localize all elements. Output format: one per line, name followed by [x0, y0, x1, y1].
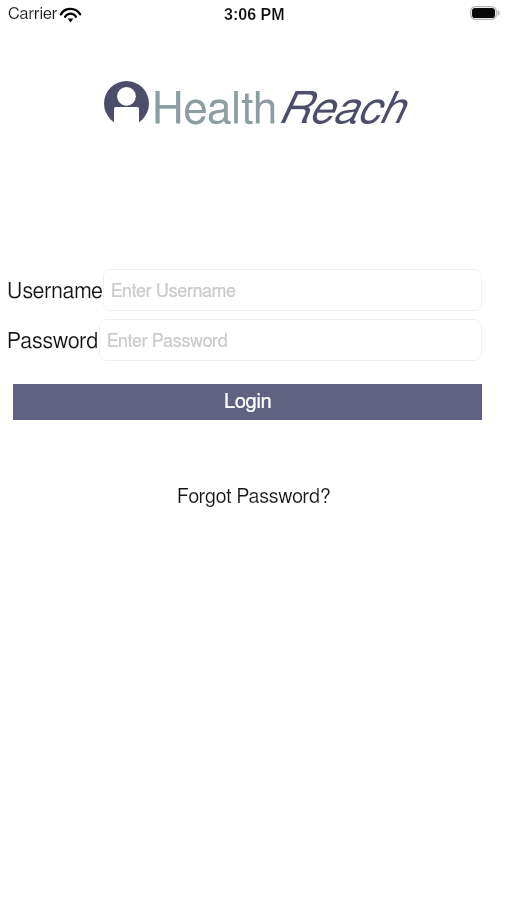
staticText: HealthReach [152, 88, 402, 132]
staticText: Password [7, 331, 99, 352]
staticText: Login [224, 392, 272, 412]
button[interactable]: Password [99, 319, 482, 361]
staticText: Carrier [8, 6, 58, 23]
button[interactable]: Forgot Password? [167, 483, 341, 511]
staticText: Forgot Password? [177, 487, 331, 507]
staticText: Enter Password [107, 333, 228, 351]
staticText: 3:06 PM [224, 6, 285, 24]
staticText: Enter Username [111, 283, 236, 301]
staticText: Username [7, 281, 103, 302]
other: Wi-Fi [61, 6, 80, 20]
other: HealthReach logo [104, 81, 149, 126]
other: Battery full [470, 6, 500, 20]
button[interactable]: Login [13, 384, 482, 420]
button[interactable]: Username [103, 269, 482, 311]
